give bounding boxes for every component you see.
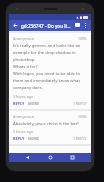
button[interactable]: Back xyxy=(11,21,20,30)
button[interactable]: Home xyxy=(46,153,55,162)
button[interactable]: More options xyxy=(82,22,89,29)
button[interactable]: Anonymous xyxy=(9,33,91,109)
staticText: 100% xyxy=(78,114,87,119)
button[interactable]: Anonymous xyxy=(9,111,91,144)
staticText: 3 hours ago xyxy=(13,94,34,99)
staticText: Anonymous xyxy=(13,36,35,41)
staticText: 100% xyxy=(78,36,87,41)
staticText: It's really generic and looks like an xyxy=(13,43,81,49)
staticText: example for the drop shadow in xyxy=(13,50,76,56)
staticText: Absolutely, jesus christ is the bat? xyxy=(13,121,79,127)
staticText: Anonymous xyxy=(13,114,35,119)
staticText: 1 REPLY xyxy=(73,136,87,141)
staticText: 1 REPLY xyxy=(73,101,87,106)
button[interactable]: Back xyxy=(23,153,32,162)
staticText: REPLY xyxy=(13,136,25,141)
button[interactable]: MORE xyxy=(28,101,40,106)
button[interactable]: MORE xyxy=(28,136,40,141)
button[interactable]: Recents xyxy=(68,153,77,162)
staticText: Whats it for? xyxy=(13,64,38,70)
staticText: REPLY xyxy=(13,101,25,106)
staticText: them and immediately know what the xyxy=(13,78,87,84)
staticText: photoshop. xyxy=(13,57,36,63)
button[interactable]: REPLY xyxy=(13,136,28,141)
staticText: With logos, you need to be able to look … xyxy=(13,71,87,77)
staticText: MORE xyxy=(28,101,40,106)
button[interactable]: Comments xyxy=(73,21,82,30)
staticText: gd:236747 - Do you li... xyxy=(21,23,73,29)
staticText: 3 hours ago xyxy=(13,129,34,134)
staticText: company does. xyxy=(13,85,43,91)
button[interactable]: REPLY xyxy=(13,101,28,106)
staticText: MORE xyxy=(28,136,40,141)
